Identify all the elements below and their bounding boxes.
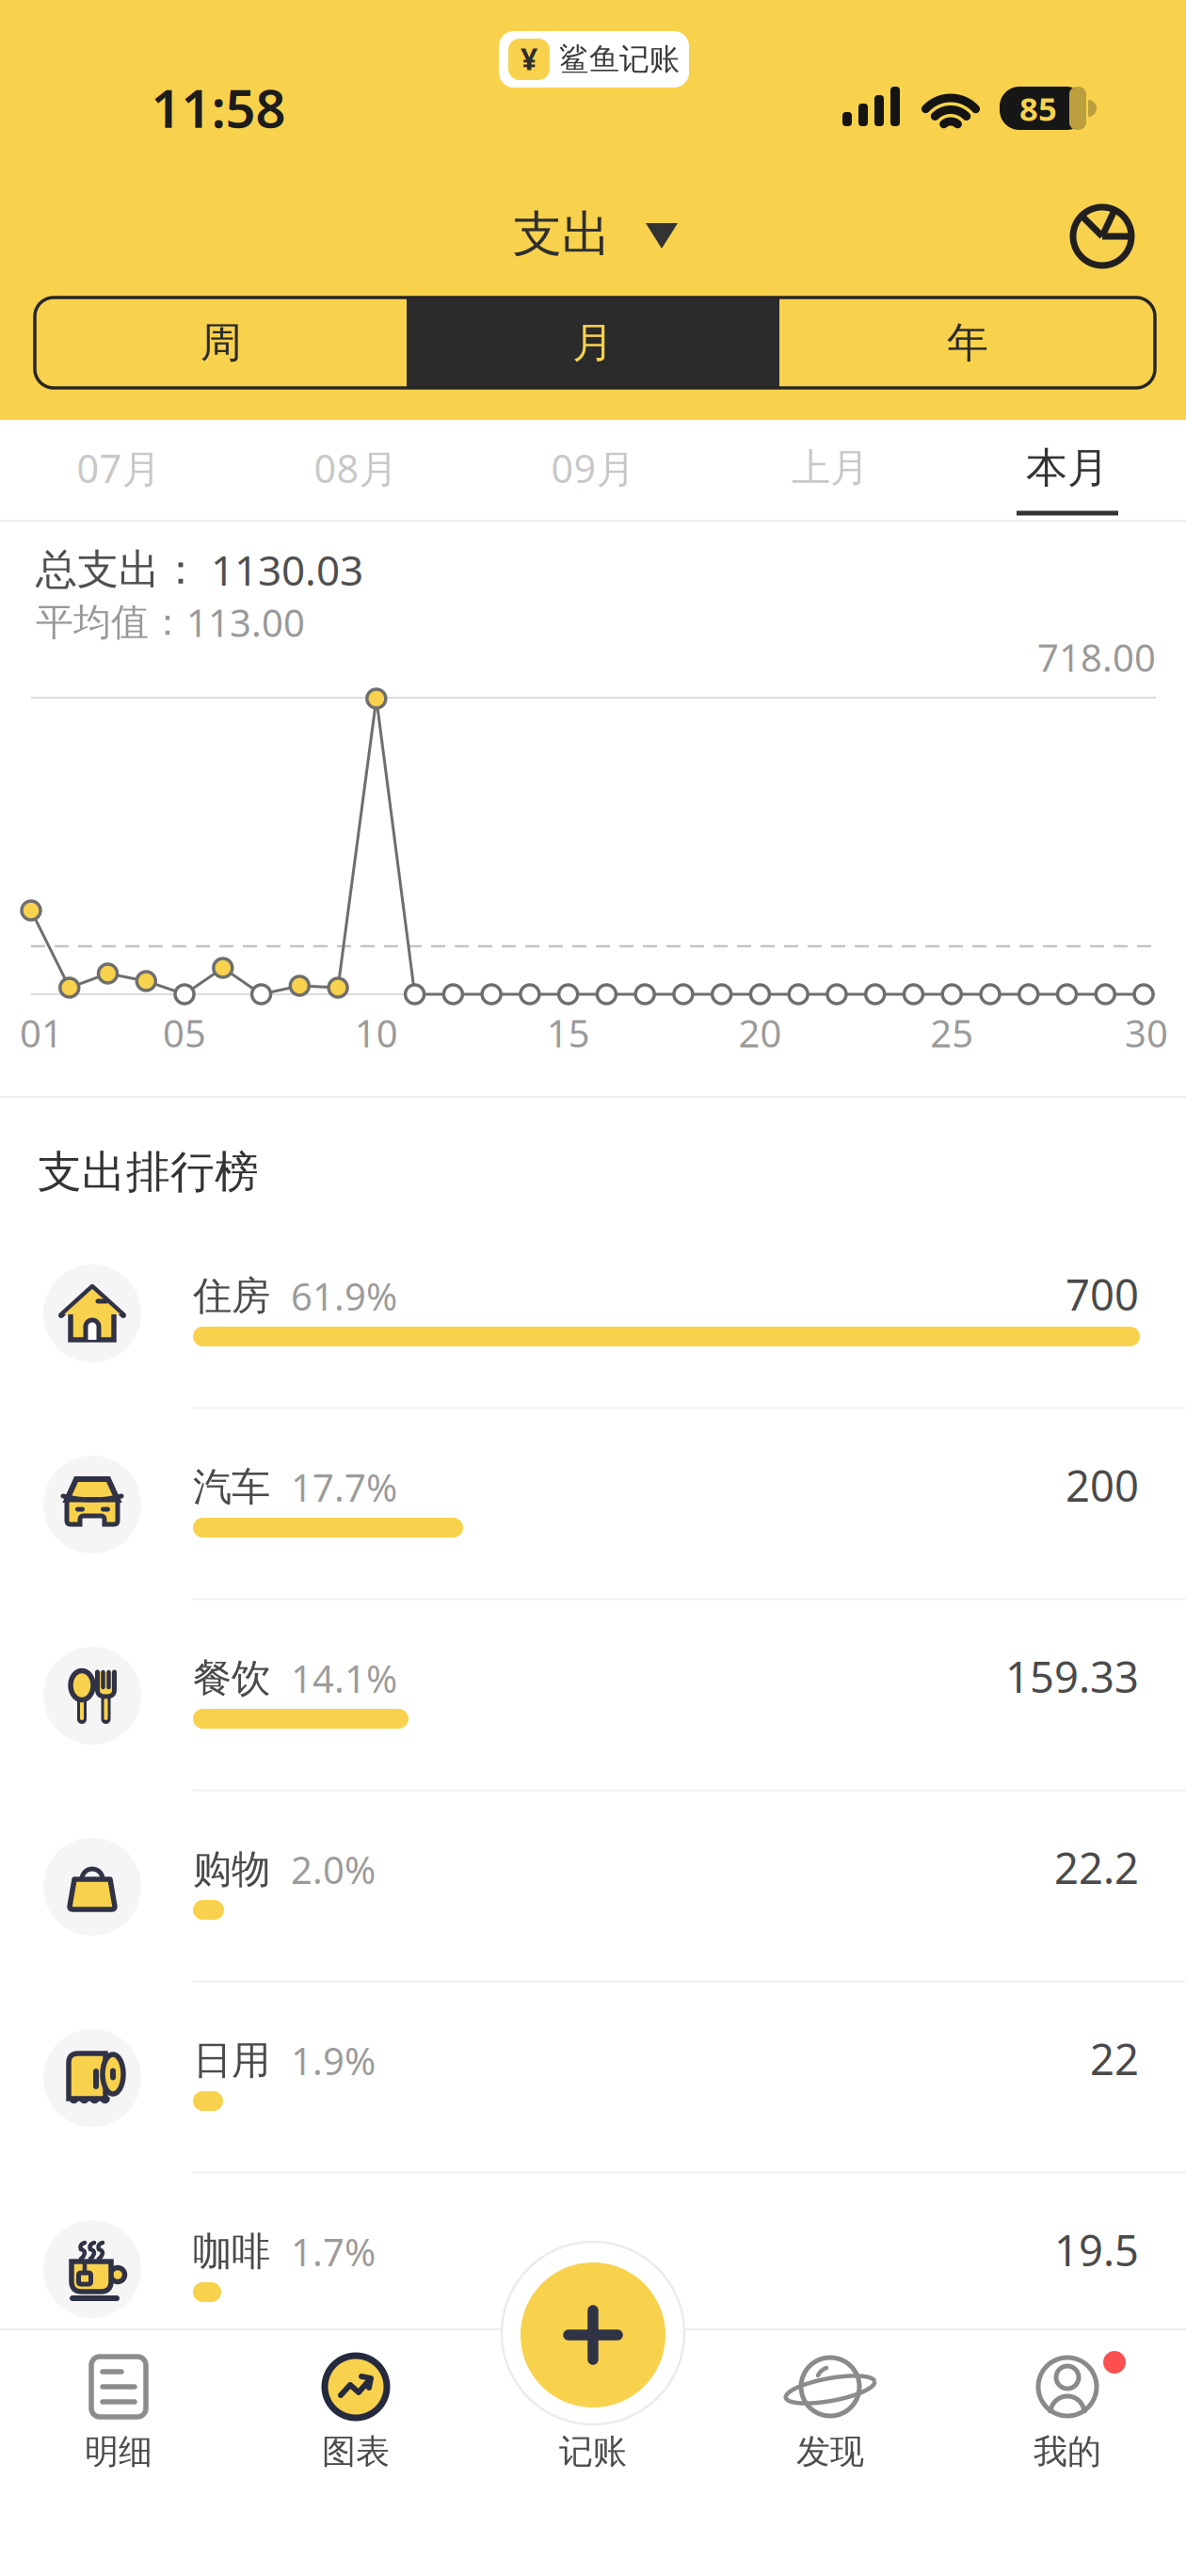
staticText: 25	[930, 1008, 973, 1058]
staticText: 购物	[193, 1845, 270, 1893]
staticText: 30	[1125, 1008, 1168, 1058]
staticText: 周	[200, 317, 242, 368]
button[interactable]: 年	[784, 298, 1151, 388]
button[interactable]	[521, 2262, 665, 2407]
staticText: 本月	[1026, 443, 1109, 493]
staticText: 1.9%	[291, 2035, 376, 2085]
staticText: 餐饮	[193, 1654, 270, 1702]
staticText: 200	[1066, 1457, 1139, 1514]
staticText: 1130.03	[211, 542, 363, 597]
staticText: 05	[163, 1008, 206, 1058]
staticText: 22	[1090, 2030, 1139, 2087]
button[interactable]: 08月	[262, 421, 450, 515]
button[interactable]: 周	[38, 298, 405, 388]
button[interactable]: 支出	[501, 197, 689, 272]
staticText: 汽车	[193, 1463, 270, 1511]
button[interactable]: 餐饮	[0, 1600, 1186, 1791]
staticText: 11:58	[151, 72, 286, 142]
staticText: 平均值：	[36, 599, 186, 645]
staticText: 10	[355, 1008, 398, 1058]
staticText: 718.00	[1037, 632, 1156, 682]
button[interactable]: 住房	[0, 1218, 1186, 1409]
staticText: 1.7%	[291, 2227, 376, 2277]
button[interactable]: 月	[407, 298, 779, 388]
staticText: 年	[947, 317, 988, 368]
staticText: 159.33	[1005, 1648, 1139, 1705]
button[interactable]: 上月	[736, 421, 924, 515]
staticText: 08月	[314, 442, 398, 494]
staticText: ¥	[521, 38, 537, 78]
button[interactable]: 07月	[24, 421, 213, 515]
staticText: 700	[1066, 1266, 1139, 1322]
button[interactable]: 汽车	[0, 1409, 1186, 1600]
staticText: 17.7%	[291, 1462, 397, 1512]
staticText: 图表	[322, 2431, 390, 2473]
staticText: 85	[1019, 87, 1057, 130]
button[interactable]: 咖啡	[0, 2173, 1186, 2365]
staticText: 住房	[193, 1272, 270, 1320]
staticText: 鲨鱼记账	[559, 41, 680, 78]
button[interactable]: 购物	[0, 1791, 1186, 1982]
staticText: 支出排行榜	[38, 1145, 259, 1199]
staticText: 支出	[513, 204, 611, 265]
staticText: 日用	[193, 2037, 270, 2084]
staticText: 明细	[85, 2431, 152, 2473]
staticText: 15	[547, 1008, 590, 1058]
staticText: 我的	[1034, 2431, 1101, 2473]
button[interactable]: 图表	[252, 2328, 459, 2498]
button[interactable]: 日用	[0, 1982, 1186, 2173]
button[interactable]: 记账	[518, 2423, 668, 2480]
staticText: 01	[20, 1008, 63, 1058]
staticText: 记账	[559, 2431, 627, 2473]
staticText: 咖啡	[193, 2228, 270, 2276]
staticText: 2.0%	[291, 1844, 376, 1894]
staticText: 月	[572, 317, 614, 368]
staticText: 19.5	[1054, 2221, 1139, 2278]
button[interactable]: 本月	[973, 416, 1162, 520]
button[interactable]: 我的	[964, 2328, 1171, 2498]
staticText: 上月	[792, 444, 869, 492]
button[interactable]	[1071, 205, 1133, 267]
staticText: 61.9%	[291, 1271, 397, 1321]
button[interactable]: 明细	[15, 2328, 222, 2498]
button[interactable]: 发现	[727, 2328, 934, 2498]
staticText: 113.00	[186, 597, 305, 647]
staticText: 09月	[551, 442, 635, 494]
staticText: 14.1%	[291, 1653, 397, 1703]
staticText: 发现	[796, 2431, 864, 2473]
staticText: 20	[738, 1008, 782, 1058]
button[interactable]: 09月	[499, 421, 687, 515]
staticText: 07月	[77, 442, 160, 494]
staticText: 总支出：	[36, 544, 201, 595]
staticText: 22.2	[1054, 1839, 1139, 1896]
